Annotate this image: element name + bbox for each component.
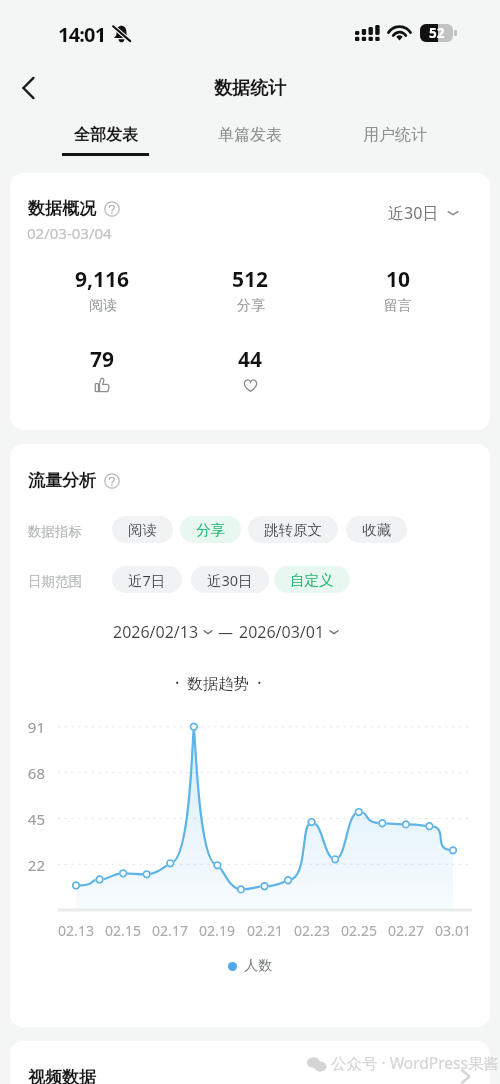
- button[interactable]: 分享: [180, 516, 241, 543]
- button[interactable]: 2026/02/13: [113, 621, 213, 643]
- staticText: 跳转原文: [264, 521, 322, 539]
- staticText: 数据概况: [28, 198, 96, 219]
- staticText: 03.01: [428, 921, 478, 940]
- button[interactable]: 跳转原文: [248, 516, 338, 543]
- staticText: 近30日: [388, 202, 439, 224]
- staticText: 近7日: [128, 570, 166, 590]
- staticText: 留言: [384, 297, 412, 315]
- staticText: 数据统计: [214, 77, 286, 100]
- staticText: 分享: [196, 521, 225, 539]
- staticText: 45: [20, 809, 45, 829]
- staticText: 9,116: [75, 265, 130, 294]
- button[interactable]: Back: [10, 68, 50, 108]
- staticText: 2026/02/13: [113, 621, 199, 643]
- staticText: 02.19: [192, 921, 242, 940]
- staticText: 02.21: [240, 921, 290, 940]
- staticText: 自定义: [290, 571, 334, 589]
- staticText: 阅读: [128, 521, 157, 539]
- button[interactable]: Help: [104, 473, 120, 489]
- button[interactable]: 自定义: [274, 566, 350, 593]
- button[interactable]: 单篇发表: [177, 125, 322, 165]
- staticText: 分享: [237, 297, 265, 315]
- staticText: 91: [20, 717, 45, 737]
- button[interactable]: 收藏: [346, 516, 407, 543]
- button[interactable]: 近30日: [388, 202, 459, 224]
- staticText: 流量分析: [28, 470, 96, 491]
- staticText: 02.13: [51, 921, 101, 940]
- staticText: 用户统计: [363, 125, 427, 145]
- staticText: 02.23: [287, 921, 337, 940]
- staticText: 512: [232, 265, 269, 294]
- staticText: 收藏: [362, 521, 391, 539]
- staticText: 02/03-03/04: [27, 223, 112, 243]
- staticText: 公众号 · WordPress果酱: [331, 1052, 499, 1073]
- staticText: 44: [238, 345, 263, 374]
- staticText: 52: [429, 24, 445, 42]
- button[interactable]: Help: [104, 201, 120, 217]
- button[interactable]: 近30日: [191, 566, 269, 593]
- staticText: 全部发表: [74, 125, 138, 145]
- staticText: 10: [386, 265, 411, 294]
- staticText: 02.15: [98, 921, 148, 940]
- staticText: 02.17: [145, 921, 195, 940]
- staticText: · 数据趋势 ·: [175, 672, 262, 693]
- staticText: 阅读: [89, 297, 117, 315]
- staticText: —: [218, 622, 234, 642]
- staticText: 视频数据: [28, 1067, 96, 1084]
- button[interactable]: 阅读: [112, 516, 173, 543]
- button[interactable]: 用户统计: [322, 125, 467, 165]
- button[interactable]: 近7日: [112, 566, 182, 593]
- staticText: 近30日: [207, 570, 253, 590]
- staticText: 2026/03/01: [239, 621, 325, 643]
- staticText: 14:01: [58, 21, 106, 48]
- staticText: 22: [20, 855, 45, 875]
- staticText: 单篇发表: [218, 125, 282, 145]
- staticText: 人数: [244, 957, 272, 975]
- staticText: 02.27: [381, 921, 431, 940]
- staticText: 02.25: [334, 921, 384, 940]
- button[interactable]: 全部发表: [33, 125, 177, 165]
- staticText: 数据指标: [28, 523, 82, 540]
- staticText: 79: [90, 345, 115, 374]
- staticText: 日期范围: [28, 573, 82, 590]
- button[interactable]: 2026/03/01: [239, 621, 339, 643]
- staticText: 68: [20, 763, 45, 783]
